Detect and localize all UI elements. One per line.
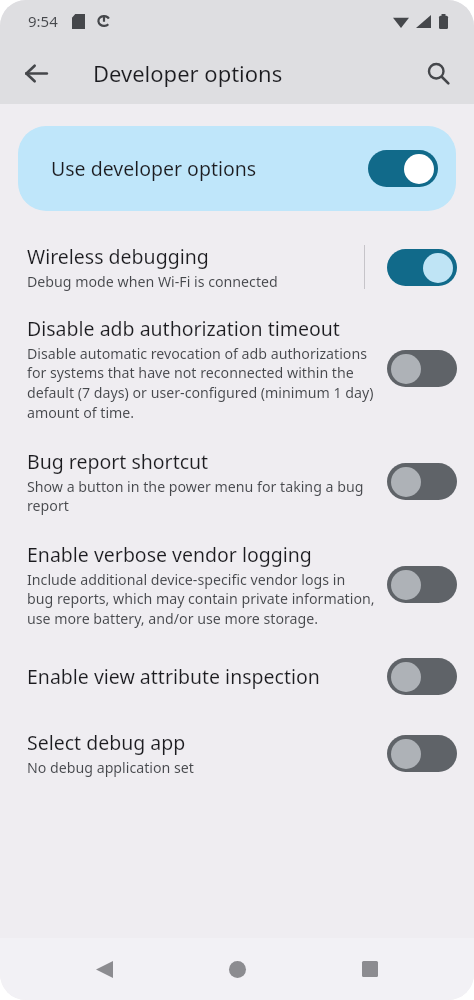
staticText: Enable view attribute inspection bbox=[27, 663, 320, 690]
button[interactable]: Enable view attribute inspection bbox=[387, 658, 457, 695]
button[interactable]: Back bbox=[12, 49, 60, 97]
button[interactable]: Enable verbose vendor logging bbox=[387, 566, 457, 603]
staticText: Enable verbose vendor logging bbox=[27, 541, 312, 568]
staticText: Use developer options bbox=[51, 155, 368, 182]
button[interactable]: Use developer options bbox=[18, 126, 456, 211]
staticText: Disable adb authorization timeout bbox=[27, 315, 340, 342]
button[interactable]: Disable adb authorization timeout bbox=[0, 301, 474, 434]
staticText: Select debug app bbox=[27, 729, 186, 756]
button[interactable]: Select debug app bbox=[0, 715, 474, 791]
staticText: Bug report shortcut bbox=[27, 448, 209, 475]
staticText: Disable automatic revocation of adb auth… bbox=[27, 344, 375, 422]
staticText: Developer options bbox=[93, 58, 283, 88]
button[interactable]: Back bbox=[78, 938, 130, 1000]
staticText: Include additional device-specific vendo… bbox=[27, 570, 375, 628]
staticText: Debug mode when Wi-Fi is connected bbox=[27, 272, 278, 291]
button[interactable]: Bug report shortcut bbox=[387, 463, 457, 500]
button[interactable]: Disable adb authorization timeout bbox=[387, 350, 457, 387]
staticText: No debug application set bbox=[27, 758, 194, 777]
button[interactable]: Select debug app bbox=[387, 735, 457, 772]
staticText: 9:54 bbox=[28, 11, 58, 31]
staticText: Show a button in the power menu for taki… bbox=[27, 477, 375, 515]
button[interactable]: Enable verbose vendor logging bbox=[0, 527, 474, 640]
button[interactable]: Bug report shortcut bbox=[0, 434, 474, 527]
button[interactable]: Use developer options bbox=[368, 150, 438, 187]
staticText: Wireless debugging bbox=[27, 243, 209, 270]
button[interactable]: Enable view attribute inspection bbox=[0, 640, 474, 715]
button[interactable]: Recent apps bbox=[344, 938, 396, 1000]
button[interactable]: Wireless debugging bbox=[387, 249, 457, 286]
button[interactable]: Wireless debugging bbox=[0, 237, 474, 301]
button[interactable]: Home bbox=[211, 938, 263, 1000]
button[interactable]: Search bbox=[414, 49, 462, 97]
